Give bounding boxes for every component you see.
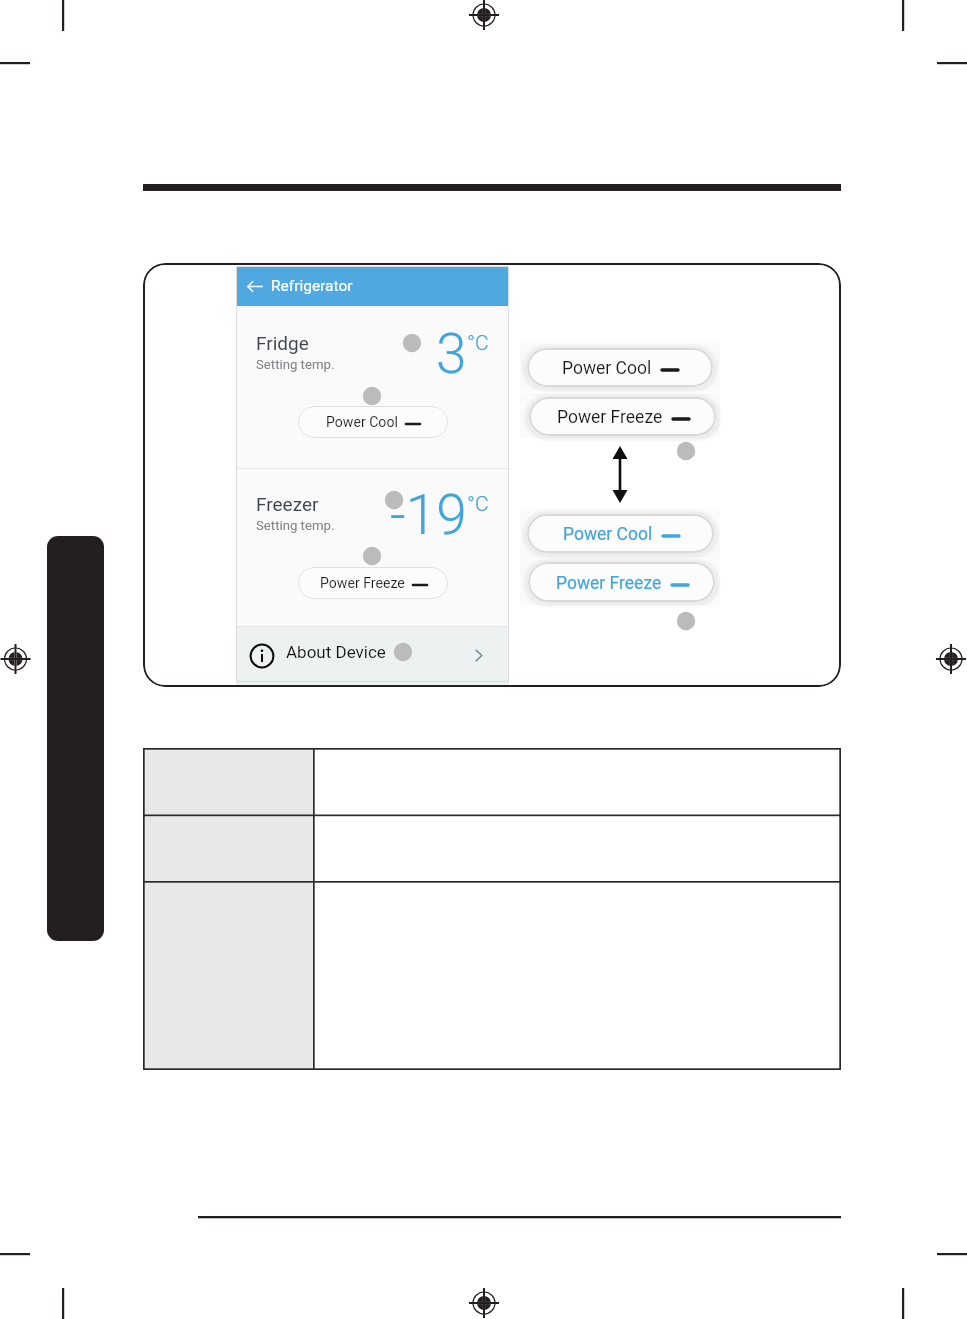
button[interactable]: Power Cool <box>527 348 713 387</box>
staticText: °C <box>467 331 489 356</box>
staticText: About Device <box>286 642 386 662</box>
staticText: Power Cool <box>563 524 653 545</box>
staticText: Setting temp. <box>256 357 335 372</box>
button[interactable]: Power Freeze <box>298 567 448 599</box>
staticText: Power Cool <box>326 414 398 431</box>
staticText: Freezer <box>256 493 319 515</box>
button[interactable]: Power Freeze <box>528 562 715 602</box>
staticText: Fridge <box>256 332 309 354</box>
staticText: -19 <box>390 483 467 547</box>
staticText: Refrigerator <box>271 277 353 295</box>
button[interactable]: Back <box>236 266 509 306</box>
staticText: °C <box>467 492 489 517</box>
button[interactable]: Back <box>245 277 263 295</box>
staticText: Power Cool <box>562 358 652 379</box>
button[interactable]: Power Freeze <box>529 397 716 436</box>
staticText: Power Freeze <box>557 407 663 428</box>
staticText: Setting temp. <box>256 518 335 533</box>
staticText: Power Freeze <box>556 573 662 594</box>
staticText: 3 <box>436 322 467 386</box>
button[interactable]: Power Cool <box>527 514 714 553</box>
button[interactable]: Power Cool <box>298 406 448 438</box>
staticText: Power Freeze <box>320 575 405 592</box>
button[interactable]: About Device <box>236 629 509 683</box>
